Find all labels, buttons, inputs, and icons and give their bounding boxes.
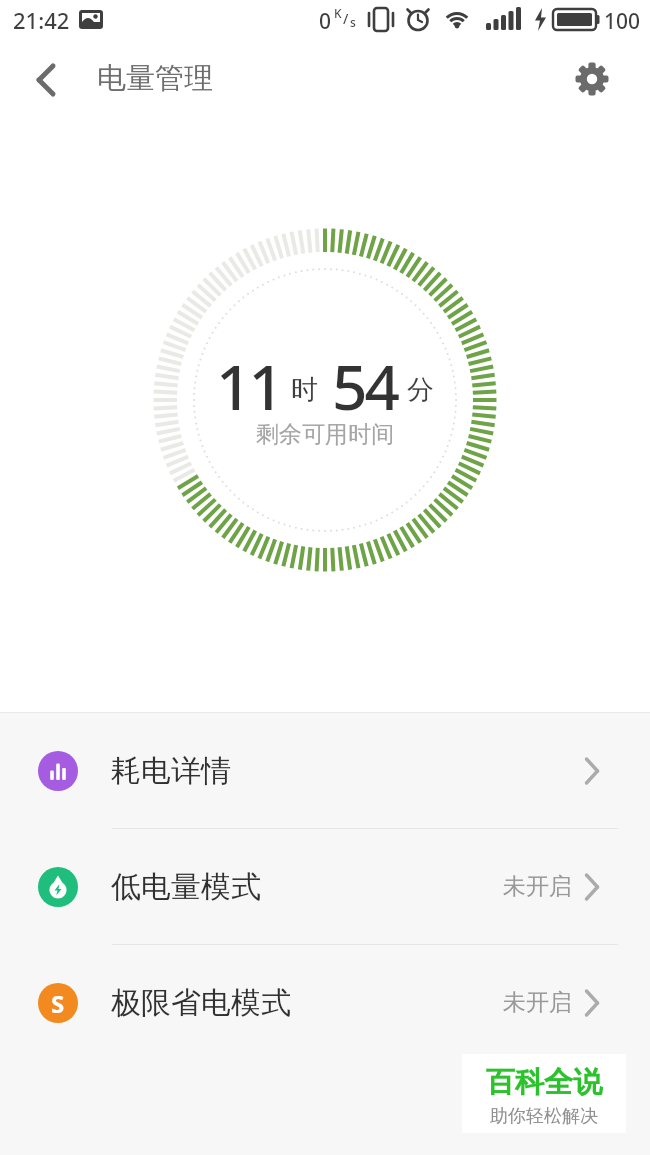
staticText: 耗电详情: [111, 752, 231, 790]
staticText: /: [343, 9, 349, 28]
staticText: 剩余可用时间: [256, 420, 394, 449]
staticText: s: [350, 14, 356, 30]
staticText: 11: [216, 344, 281, 428]
staticText: 极限省电模式: [111, 984, 291, 1022]
staticText: 0: [319, 7, 332, 36]
staticText: 21:42: [13, 5, 70, 35]
staticText: S: [51, 987, 65, 1020]
button[interactable]: 低电量模式: [0, 829, 650, 944]
staticText: 未开启: [503, 988, 572, 1017]
staticText: 未开启: [503, 872, 572, 901]
staticText: K: [334, 5, 342, 21]
staticText: 助你轻松解决: [490, 1105, 598, 1128]
staticText: 低电量模式: [111, 868, 261, 906]
staticText: 100: [604, 7, 641, 36]
staticText: 时: [291, 373, 318, 407]
button[interactable]: S: [0, 945, 650, 1060]
button[interactable]: 耗电详情: [0, 713, 650, 828]
staticText: 电量管理: [97, 60, 213, 97]
button[interactable]: [570, 57, 614, 101]
button[interactable]: [24, 58, 68, 102]
staticText: 分: [407, 373, 434, 407]
staticText: 百科全说: [486, 1064, 602, 1101]
staticText: 54: [332, 344, 397, 428]
